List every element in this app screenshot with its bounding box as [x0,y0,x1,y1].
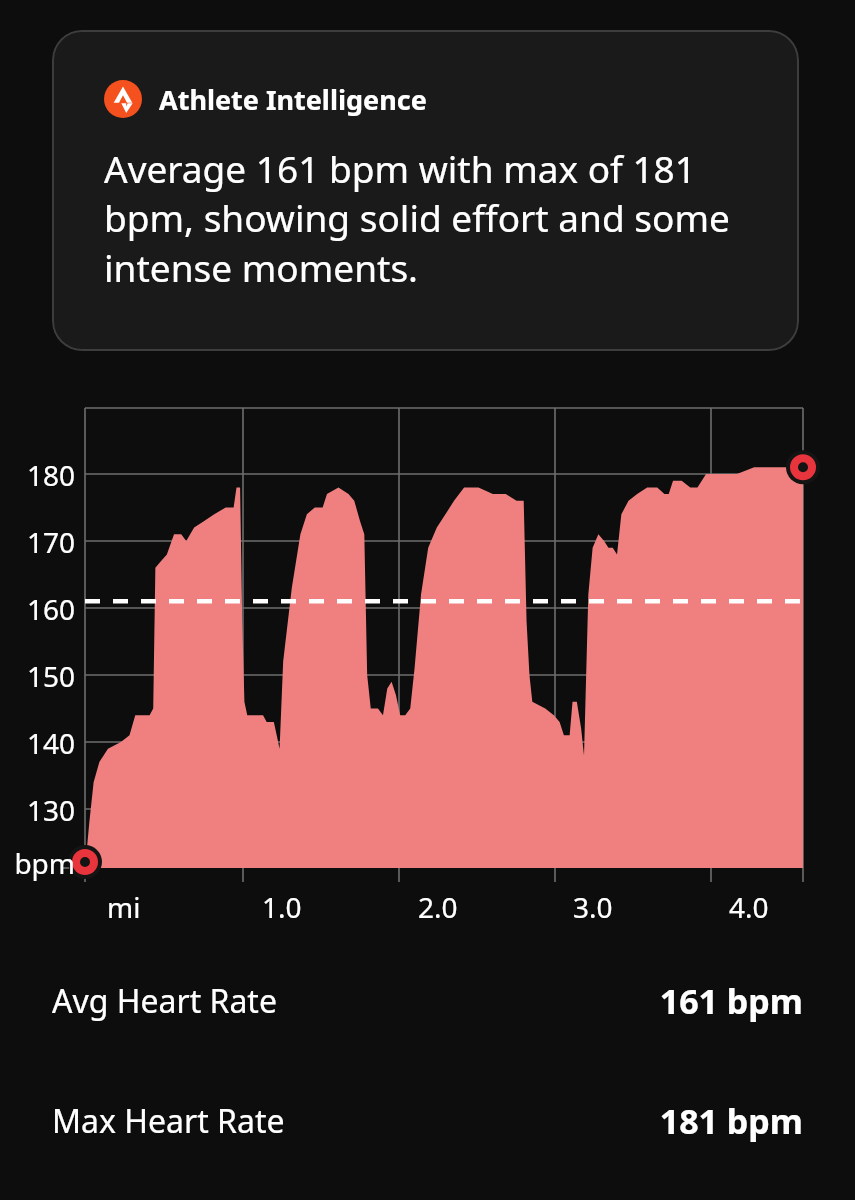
other: Athlete Intelligence [104,80,142,118]
button[interactable]: Athlete Intelligence [52,30,799,351]
staticText: Max Heart Rate [52,1099,285,1143]
staticText: 130 [0,791,75,829]
staticText: 170 [0,523,75,561]
staticText: 140 [0,724,75,762]
staticText: Athlete Intelligence [159,81,427,118]
button[interactable]: Avg Heart Rate [0,976,855,1026]
staticText: 150 [0,657,75,695]
staticText: Avg Heart Rate [52,979,277,1023]
staticText: mi [107,888,141,926]
staticText: bpm [0,844,75,882]
staticText: 4.0 [729,888,769,926]
button[interactable]: Max Heart Rate [0,1096,855,1146]
staticText: Average 161 bpm with max of 181 bpm, sho… [104,143,763,293]
staticText: 1.0 [262,888,302,926]
staticText: 181 bpm [286,1098,803,1144]
staticText: 160 [0,590,75,628]
staticText: 180 [0,456,75,494]
staticText: 2.0 [418,888,458,926]
staticText: 161 bpm [278,978,803,1024]
staticText: 3.0 [573,888,613,926]
